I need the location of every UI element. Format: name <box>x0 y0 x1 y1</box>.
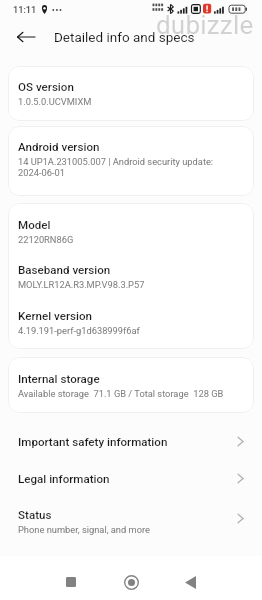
staticText: 14 UP1A.231005.007 | Android security up… <box>18 156 214 178</box>
staticText: 1.0.5.0.UCVMIXM <box>18 96 92 107</box>
button[interactable]: Legal information <box>0 460 262 496</box>
staticText: dubizzle <box>156 10 254 40</box>
button[interactable]: Important safety information <box>0 424 262 460</box>
button[interactable]: Back <box>173 565 207 599</box>
button[interactable]: Android version <box>0 140 262 178</box>
button[interactable]: Home <box>114 565 148 599</box>
staticText: Phone number, signal, and more <box>18 524 151 535</box>
button[interactable]: Recent apps <box>54 565 88 599</box>
button[interactable]: Baseband version <box>0 263 262 290</box>
staticText: Status <box>18 508 52 522</box>
staticText: MOLY.LR12A.R3.MP.V98.3.P57 <box>18 279 145 290</box>
staticText: 4.19.191-perf-g1d638999f6af <box>18 325 140 336</box>
staticText: Available storage 71.1 GB / Total storag… <box>18 388 224 399</box>
staticText: OS version <box>18 80 74 94</box>
button[interactable]: Kernel version <box>0 309 262 336</box>
staticText: Baseband version <box>18 263 111 277</box>
button[interactable]: Model <box>0 218 262 245</box>
button[interactable]: Back <box>12 23 39 50</box>
staticText: Model <box>18 218 51 232</box>
button[interactable]: OS version <box>0 80 262 107</box>
staticText: Internal storage <box>18 372 100 386</box>
staticText: Detailed info and specs <box>54 29 195 45</box>
staticText: Kernel version <box>18 309 92 323</box>
staticText: 11:11 <box>13 4 37 15</box>
staticText: Important safety information <box>18 435 168 449</box>
staticText: Legal information <box>18 472 110 486</box>
button[interactable]: Internal storage <box>0 372 262 399</box>
staticText: 22120RN86G <box>18 234 74 245</box>
staticText: Android version <box>18 140 100 154</box>
button[interactable]: Status <box>0 496 262 540</box>
